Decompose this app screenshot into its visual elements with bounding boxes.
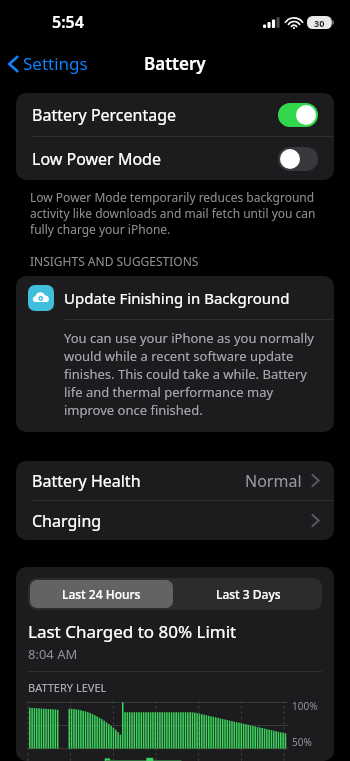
staticText: Last Charged to 80% Limit	[28, 620, 237, 643]
button[interactable]: Last 3 Days	[177, 580, 320, 608]
staticText: Low Power Mode	[32, 148, 278, 170]
button[interactable]: Settings	[0, 48, 96, 79]
staticText: Battery Health	[32, 470, 245, 492]
staticText: 30	[314, 17, 325, 29]
staticText: Last 24 Hours	[62, 586, 141, 602]
staticText: Update Finishing in Background	[64, 288, 290, 308]
button[interactable]: Update Finishing in Background	[16, 276, 334, 432]
staticText: 8:04 AM	[28, 645, 78, 663]
staticText: Charging	[32, 510, 311, 532]
staticText: 5:54	[52, 11, 84, 33]
staticText: 100%	[292, 699, 318, 713]
button[interactable]: Charging	[16, 501, 334, 540]
button[interactable]: Low Power Mode	[16, 137, 334, 180]
button[interactable]: Last 24 Hours	[30, 580, 173, 608]
button[interactable]	[278, 103, 318, 127]
staticText: Last 3 Days	[216, 586, 281, 602]
staticText: You can use your iPhone as you normally …	[64, 329, 320, 419]
staticText: Battery Percentage	[32, 104, 278, 126]
staticText: Settings	[23, 52, 88, 75]
staticText: Low Power Mode temporarily reduces backg…	[30, 189, 320, 237]
button[interactable]	[278, 147, 318, 171]
staticText: Battery	[144, 52, 206, 75]
button[interactable]: Battery Percentage	[16, 93, 334, 136]
staticText: Normal	[245, 470, 302, 492]
button[interactable]: Battery Health	[16, 461, 334, 500]
staticText: INSIGHTS AND SUGGESTIONS	[30, 253, 199, 269]
staticText: BATTERY LEVEL	[28, 680, 107, 695]
staticText: 50%	[292, 735, 312, 749]
